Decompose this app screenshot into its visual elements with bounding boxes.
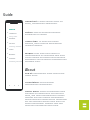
button[interactable]: Logo [79,100,89,110]
staticText: Wi-Fi, data [9,35,18,37]
staticText: Display [9,37,16,40]
staticText: About [25,67,36,72]
staticText: Useful tips: Ut enim ad minim veniam, qu… [25,39,67,47]
staticText: System [9,57,16,60]
staticText: Sed ut: perspiciatis unde omnis iste nat… [25,71,67,77]
staticText: Sound [9,42,15,45]
staticText: Important: Lorem ipsum dolor sit amet, c… [25,19,67,25]
staticText: Nemo enim: ipsam voluptatem quia volupta… [25,89,67,107]
staticText: Menu [9,28,16,31]
staticText: Volume, vibrate [9,45,22,47]
staticText: Notice: Sed do eiusmod tempor incididunt… [25,30,67,36]
staticText: Battery [9,53,16,56]
staticText: Network [9,32,17,35]
staticText: Updates, backup [9,60,22,62]
staticText: Guide [3,12,13,17]
staticText: Apps [9,48,14,51]
staticText: Mobile: Duis aute irure dolor in reprehe… [25,51,67,63]
staticText: Voluptatem: accusantium doloremque lauda… [25,80,67,86]
